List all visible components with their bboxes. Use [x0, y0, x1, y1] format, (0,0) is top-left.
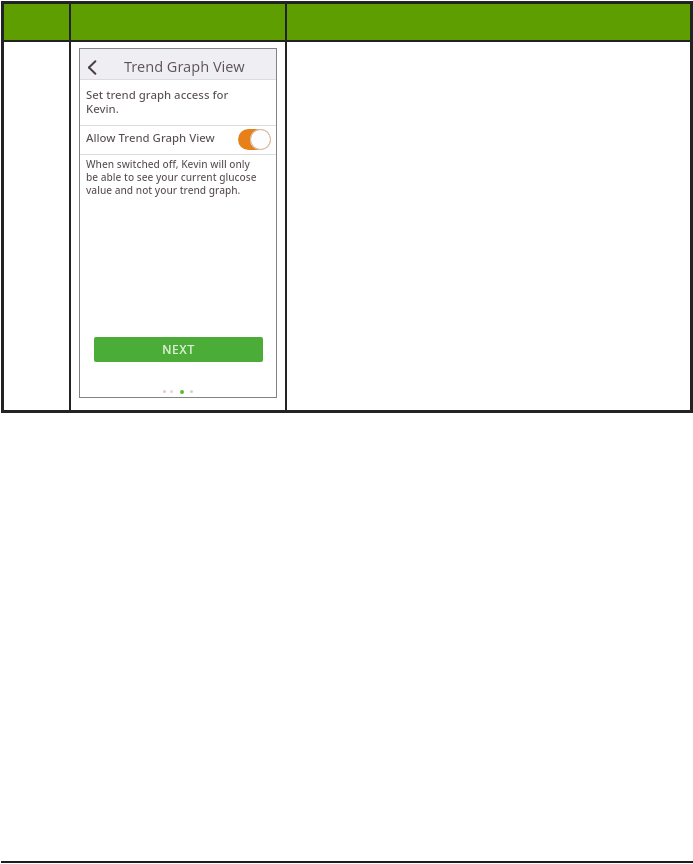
staticText: NEXT	[162, 341, 195, 357]
button[interactable]: Back	[79, 48, 105, 79]
button[interactable]: Allow Trend Graph View	[79, 126, 277, 154]
button[interactable]: NEXT	[94, 337, 263, 362]
staticText: When switched off, Kevin will only be ab…	[86, 157, 257, 197]
staticText: Set trend graph access for Kevin.	[86, 87, 229, 117]
staticText: Trend Graph View	[124, 56, 245, 76]
staticText: Allow Trend Graph View	[86, 130, 215, 146]
